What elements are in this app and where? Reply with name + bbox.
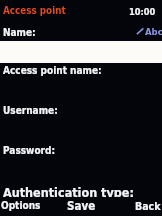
- button[interactable]: Text entry mode Abc: [136, 26, 162, 37]
- button[interactable]: Options: [0, 198, 162, 216]
- button[interactable]: Save: [0, 198, 162, 216]
- button[interactable]: Authentication type:: [0, 187, 162, 199]
- staticText: Abc: [145, 26, 162, 37]
- staticText: 10:00: [129, 6, 156, 17]
- staticText: Name:: [3, 27, 36, 39]
- staticText: Password:: [3, 145, 56, 157]
- staticText: Save: [67, 199, 96, 212]
- staticText: Authentication type:: [3, 187, 134, 197]
- staticText: Back: [135, 200, 161, 212]
- staticText: Access point name:: [3, 65, 102, 77]
- staticText: Options: [1, 200, 41, 212]
- staticText: Access point: [3, 5, 66, 16]
- button[interactable]: Back: [0, 198, 162, 216]
- staticText: Username:: [3, 105, 58, 117]
